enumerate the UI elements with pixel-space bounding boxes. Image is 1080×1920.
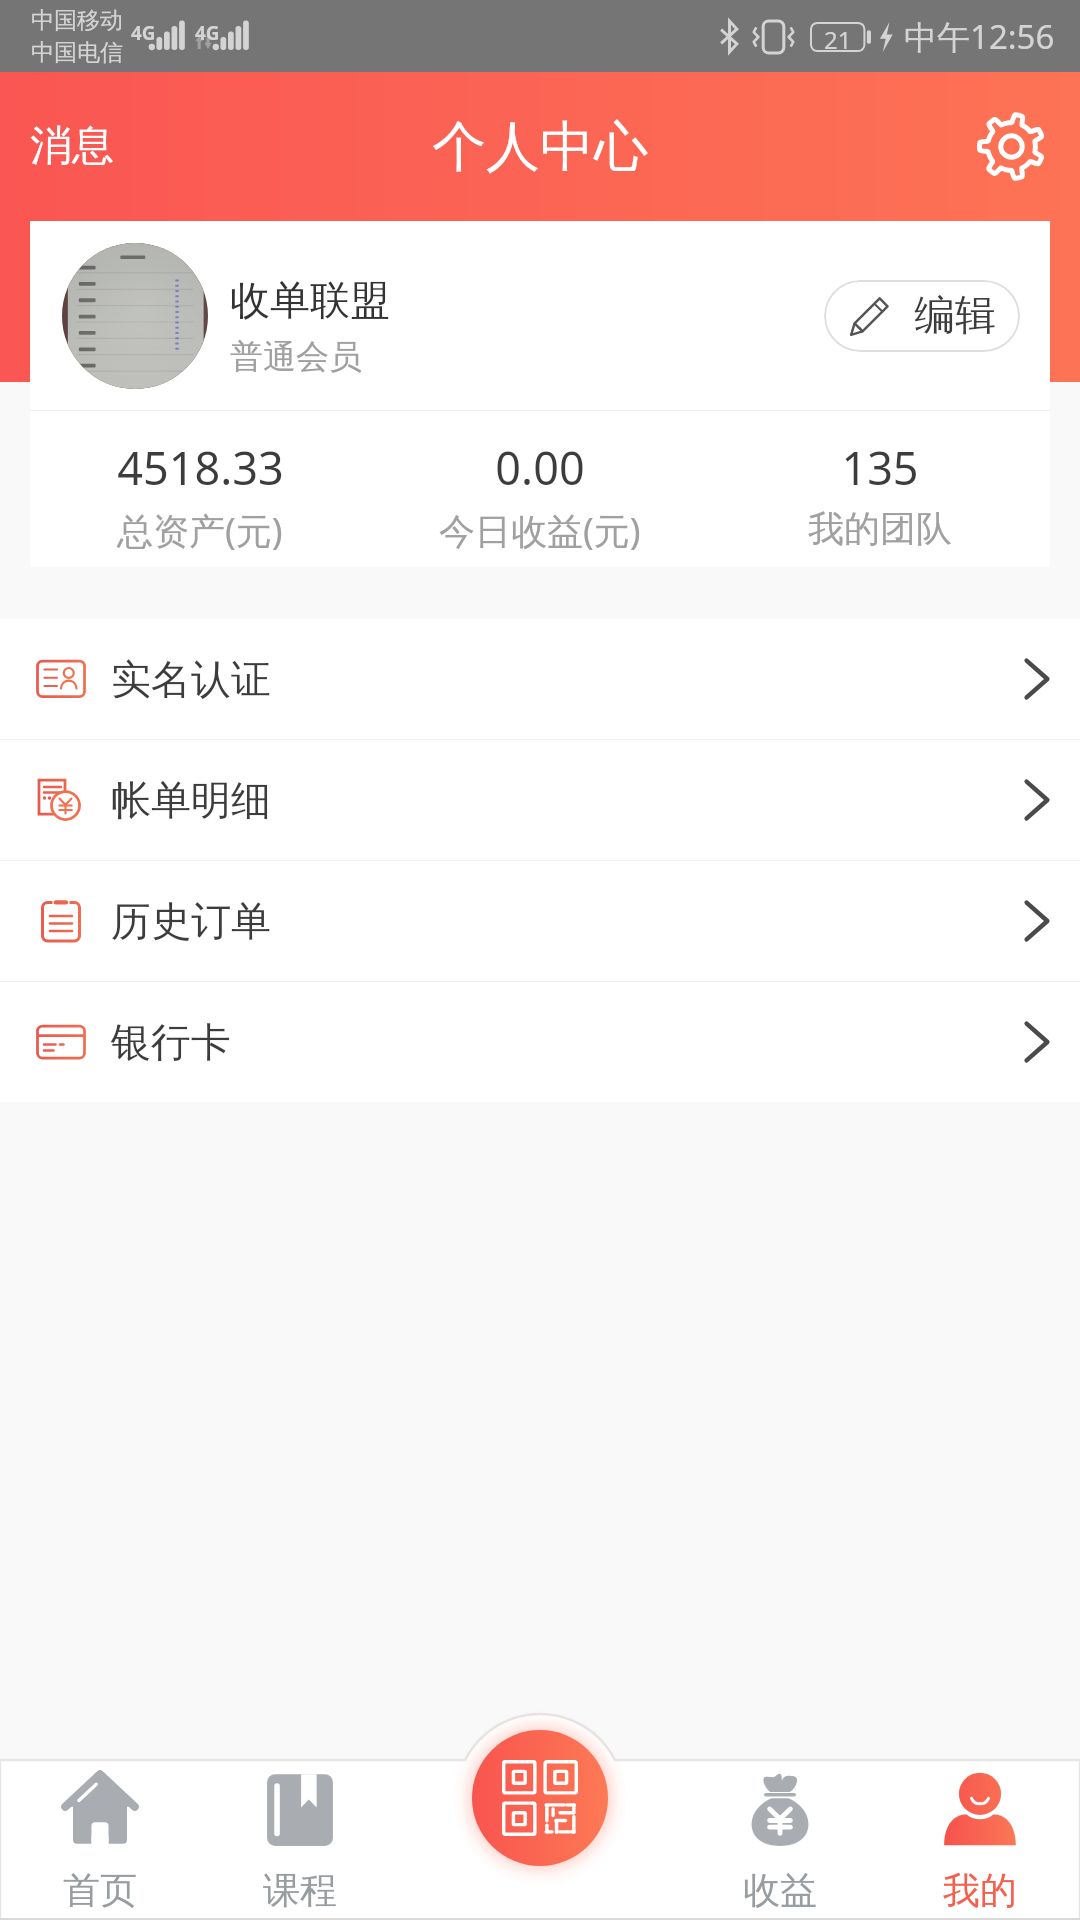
staticText: 4G xyxy=(195,20,220,46)
staticText: 收益 xyxy=(743,1867,817,1914)
staticText: 135 xyxy=(841,437,919,498)
button[interactable]: 历史订单 xyxy=(0,861,1080,981)
button[interactable]: 收益 xyxy=(680,1760,880,1920)
staticText: 课程 xyxy=(263,1867,337,1914)
staticText: 首页 xyxy=(63,1867,137,1914)
staticText: 4518.33 xyxy=(117,437,284,498)
staticText: 中国电信 xyxy=(31,38,123,67)
staticText: 普通会员 xyxy=(230,336,362,378)
staticText: 0.00 xyxy=(495,437,585,498)
staticText: 中国移动 xyxy=(31,6,123,35)
staticText: 历史订单 xyxy=(111,896,271,946)
button[interactable]: 首页 xyxy=(0,1760,200,1920)
button[interactable]: Settings xyxy=(931,72,1080,221)
staticText: 总资产(元) xyxy=(117,506,283,555)
button[interactable]: 4518.33 xyxy=(30,411,370,567)
staticText: 银行卡 xyxy=(111,1017,231,1067)
staticText: 4G xyxy=(131,20,156,46)
staticText: 21 xyxy=(824,23,852,51)
staticText: 今日收益(元) xyxy=(439,506,641,555)
staticText: 消息 xyxy=(30,120,114,173)
staticText: 编辑 xyxy=(914,290,996,342)
button[interactable]: 我的 xyxy=(880,1760,1080,1920)
button[interactable]: 帐单明细 xyxy=(0,740,1080,860)
button[interactable]: 实名认证 xyxy=(0,619,1080,739)
button[interactable]: Avatar xyxy=(62,243,208,389)
button[interactable]: 消息 xyxy=(0,72,140,221)
button[interactable]: 课程 xyxy=(200,1760,400,1920)
button[interactable]: 135 xyxy=(710,411,1050,567)
staticText: 收单联盟 xyxy=(230,275,390,325)
staticText: 实名认证 xyxy=(111,654,271,704)
button[interactable]: 银行卡 xyxy=(0,982,1080,1102)
button[interactable]: 编辑 xyxy=(824,280,1020,352)
staticText: 我的 xyxy=(943,1867,1017,1914)
staticText: 中午12:56 xyxy=(904,14,1055,59)
staticText: 帐单明细 xyxy=(111,775,271,825)
button[interactable]: Scan QR code xyxy=(472,1730,608,1866)
button[interactable]: 0.00 xyxy=(370,411,710,567)
staticText: 我的团队 xyxy=(808,506,952,551)
staticText: 个人中心 xyxy=(432,113,648,181)
